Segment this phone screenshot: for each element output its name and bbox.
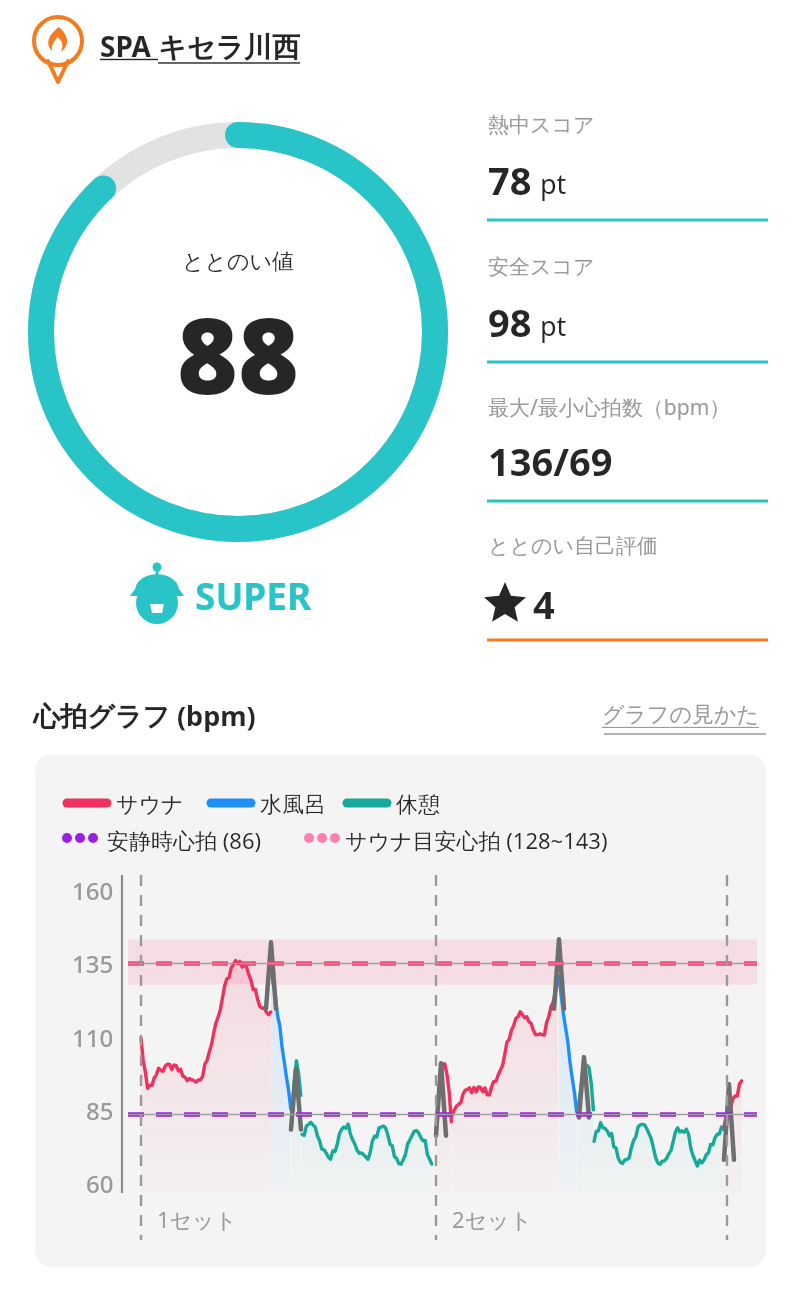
- staticText: 1セット: [157, 1204, 238, 1234]
- staticText: 78: [488, 154, 532, 206]
- staticText: 136/69: [488, 435, 613, 487]
- staticText: 熱中スコア: [488, 112, 595, 138]
- staticText: 98: [488, 296, 532, 348]
- staticText: ととのい値: [182, 248, 295, 276]
- staticText: ととのい自己評価: [488, 533, 658, 559]
- button[interactable]: SPA キセラ川西: [26, 10, 348, 72]
- staticText: 安静時心拍 (86): [107, 825, 262, 855]
- staticText: サウナ目安心拍 (128~143): [345, 825, 608, 855]
- staticText: 心拍グラフ (bpm): [33, 697, 256, 734]
- staticText: 2セット: [452, 1204, 533, 1234]
- staticText: pt: [540, 165, 567, 202]
- staticText: 安全スコア: [488, 254, 595, 280]
- staticText: グラフの見かた: [602, 701, 760, 729]
- staticText: 最大/最小心拍数（bpm）: [488, 393, 731, 422]
- staticText: SUPER: [195, 570, 312, 620]
- staticText: 85: [86, 1094, 114, 1127]
- staticText: 110: [72, 1021, 114, 1054]
- staticText: 160: [72, 874, 114, 907]
- staticText: 休憩: [396, 791, 440, 819]
- button[interactable]: グラフの見かた: [602, 701, 760, 729]
- staticText: サウナ: [116, 791, 184, 819]
- staticText: 88: [177, 283, 299, 425]
- staticText: pt: [540, 307, 567, 344]
- staticText: 135: [72, 947, 114, 980]
- staticText: SPA キセラ川西: [100, 27, 301, 65]
- staticText: 4: [533, 578, 555, 630]
- staticText: 水風呂: [260, 791, 326, 819]
- staticText: 60: [86, 1167, 114, 1200]
